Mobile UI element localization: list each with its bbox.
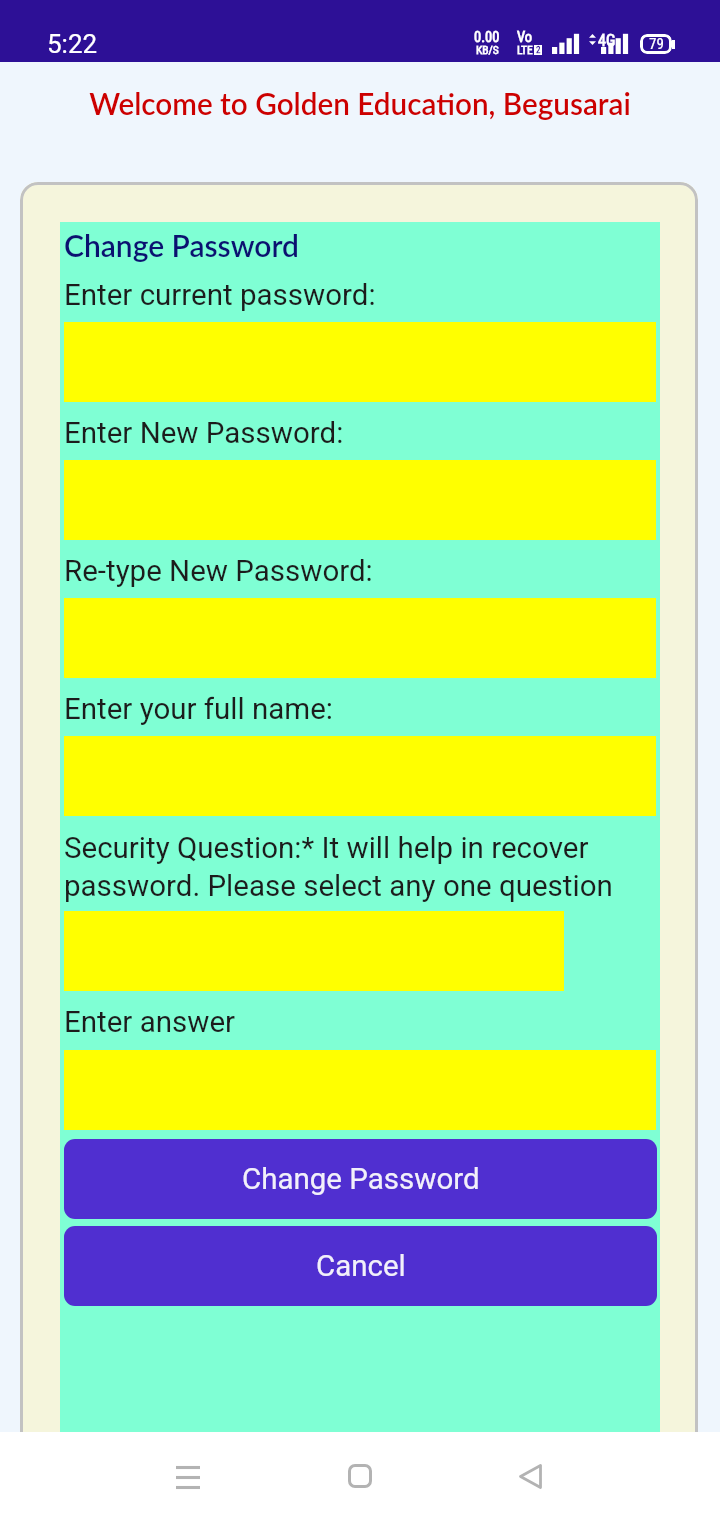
button[interactable]: Cancel bbox=[64, 1226, 657, 1306]
staticText: 4G bbox=[598, 31, 616, 50]
staticText: Enter answer bbox=[64, 1005, 659, 1040]
staticText: 0.00 bbox=[474, 29, 500, 46]
staticText: Vo bbox=[517, 29, 533, 46]
staticText: 2 bbox=[536, 45, 541, 55]
staticText: Enter your full name: bbox=[64, 692, 659, 727]
staticText: KB/S bbox=[476, 43, 499, 56]
staticText: Enter New Password: bbox=[64, 416, 659, 451]
staticText: Security Question:* It will help in reco… bbox=[64, 831, 659, 903]
staticText: Re-type New Password: bbox=[64, 554, 659, 589]
staticText: 5:22 bbox=[47, 29, 98, 59]
staticText: LTE bbox=[517, 43, 533, 56]
staticText: Change Password bbox=[64, 227, 299, 263]
staticText: Enter current password: bbox=[64, 278, 659, 313]
button[interactable]: Home bbox=[324, 1432, 396, 1520]
button[interactable]: Back bbox=[494, 1432, 566, 1520]
staticText: 79 bbox=[649, 35, 664, 53]
staticText: Change Password bbox=[242, 1162, 480, 1197]
staticText: Cancel bbox=[316, 1249, 406, 1284]
button[interactable]: Change Password bbox=[64, 1139, 657, 1219]
button[interactable]: Recent apps bbox=[152, 1432, 224, 1520]
staticText: Welcome to Golden Education, Begusarai bbox=[89, 86, 631, 120]
